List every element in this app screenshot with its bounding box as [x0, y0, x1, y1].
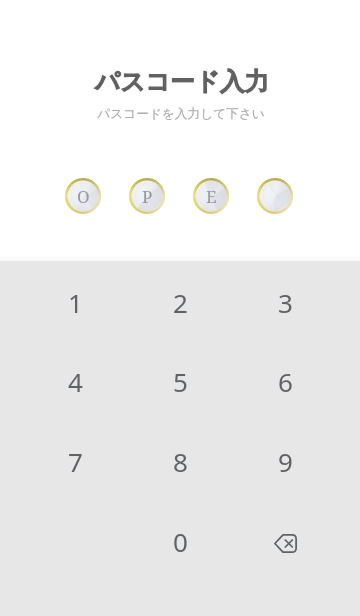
staticText: 0: [173, 524, 188, 559]
staticText: E: [206, 185, 217, 208]
staticText: 8: [173, 444, 188, 479]
staticText: 9: [278, 444, 293, 479]
button[interactable]: Backspace: [237, 504, 333, 578]
button[interactable]: 1: [27, 265, 123, 339]
button[interactable]: 8: [132, 424, 228, 498]
button[interactable]: 4: [27, 344, 123, 418]
button[interactable]: 6: [237, 344, 333, 418]
button[interactable]: 3: [237, 265, 333, 339]
staticText: パスコード入力: [2, 66, 360, 97]
button[interactable]: 0: [132, 504, 228, 578]
staticText: 1: [68, 285, 83, 320]
staticText: 6: [278, 364, 293, 399]
staticText: P: [142, 185, 153, 208]
button[interactable]: 9: [237, 424, 333, 498]
staticText: 2: [173, 285, 188, 320]
staticText: 4: [68, 364, 83, 399]
button[interactable]: 2: [132, 265, 228, 339]
button[interactable]: 7: [27, 424, 123, 498]
staticText: 5: [173, 364, 188, 399]
staticText: パスコードを入力して下さい: [1, 106, 360, 122]
other: Backspace: [263, 519, 307, 563]
staticText: 7: [68, 444, 83, 479]
button[interactable]: 5: [132, 344, 228, 418]
staticText: 3: [278, 285, 293, 320]
staticText: O: [77, 185, 90, 208]
